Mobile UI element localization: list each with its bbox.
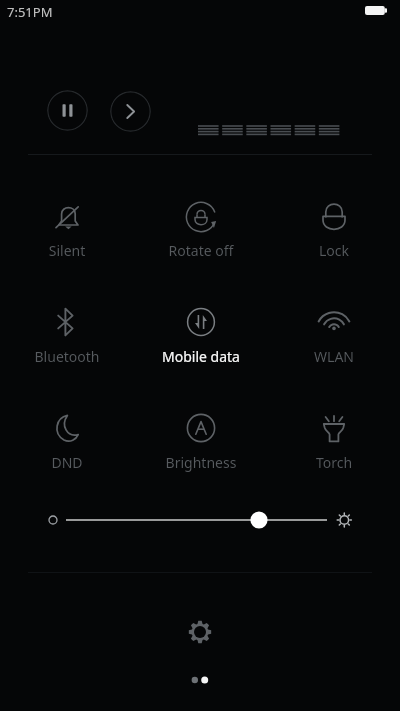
button[interactable]: Settings <box>176 608 224 656</box>
staticText: Torch <box>274 453 394 472</box>
button[interactable]: Torch <box>274 400 394 464</box>
button[interactable]: Mobile data <box>141 294 261 358</box>
button[interactable]: WLAN <box>274 294 394 358</box>
button[interactable]: Next <box>110 91 151 132</box>
staticText: Rotate off <box>141 241 261 260</box>
button[interactable]: Pause <box>47 90 88 131</box>
button[interactable]: Lock <box>274 189 394 253</box>
staticText: 7:51PM <box>7 3 53 21</box>
button[interactable]: Bluetooth <box>7 294 127 358</box>
staticText: Silent <box>7 241 127 260</box>
staticText: Brightness <box>141 453 261 472</box>
button[interactable]: Brightness <box>141 400 261 464</box>
button[interactable]: DND <box>7 400 127 464</box>
staticText: Mobile data <box>141 347 261 366</box>
button[interactable]: Rotate off <box>141 189 261 253</box>
staticText: WLAN <box>274 347 394 366</box>
button[interactable]: Silent <box>7 189 127 253</box>
staticText: Bluetooth <box>7 347 127 366</box>
button[interactable]: Brightness slider <box>40 504 360 536</box>
staticText: DND <box>7 453 127 472</box>
staticText: Lock <box>274 241 394 260</box>
